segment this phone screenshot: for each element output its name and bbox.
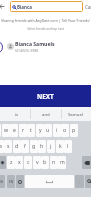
- staticText: g: [32, 143, 36, 150]
- staticText: d: [15, 143, 19, 150]
- staticText: m: [60, 159, 65, 166]
- button[interactable]: e: [10, 124, 18, 137]
- button[interactable]: y: [36, 124, 44, 137]
- button[interactable]: NEXT: [0, 85, 91, 107]
- staticText: r: [22, 127, 25, 134]
- button[interactable]: EN: [7, 175, 15, 188]
- button[interactable]: h: [38, 140, 46, 153]
- button[interactable]: p: [70, 124, 78, 137]
- staticText: v: [36, 159, 39, 166]
- staticText: u: [46, 127, 50, 134]
- button[interactable]: u: [44, 124, 52, 137]
- staticText: c: [27, 159, 30, 166]
- staticText: Cancel: [85, 4, 91, 10]
- staticText: p: [72, 127, 76, 134]
- button[interactable]: Shift: [0, 156, 6, 169]
- button[interactable]: Back: [0, 2, 6, 11]
- button[interactable]: Samuel: [62, 107, 91, 121]
- button[interactable]: o: [61, 124, 69, 137]
- button[interactable]: Bianca: [10, 1, 83, 12]
- staticText: h: [40, 143, 44, 150]
- button[interactable]: Space: [25, 175, 74, 188]
- button[interactable]: m: [58, 156, 66, 169]
- button[interactable]: l: [64, 140, 72, 153]
- staticText: w: [4, 127, 9, 134]
- staticText: n: [52, 159, 56, 166]
- button[interactable]: d: [13, 140, 21, 153]
- staticText: b: [43, 159, 47, 166]
- button[interactable]: q: [0, 124, 1, 137]
- staticText: Bianca: [17, 4, 32, 10]
- staticText: o: [63, 127, 67, 134]
- staticText: f: [24, 143, 26, 150]
- button[interactable]: s: [4, 140, 12, 153]
- button[interactable]: k: [56, 140, 64, 153]
- button[interactable]: w: [2, 124, 10, 137]
- button[interactable]: Backspace: [82, 156, 91, 169]
- staticText: Sharing friends with AnyDate.com | Tell …: [1, 18, 91, 23]
- staticText: Samuel: [68, 111, 83, 117]
- staticText: t: [30, 127, 32, 134]
- staticText: .: [79, 179, 81, 184]
- staticText: Select friends and tap next: [0, 27, 91, 31]
- staticText: x: [18, 159, 21, 166]
- staticText: i: [56, 127, 58, 134]
- staticText: e: [13, 127, 16, 134]
- staticText: k: [59, 143, 62, 150]
- button[interactable]: Emoji: [16, 175, 24, 188]
- button[interactable]: r: [19, 124, 27, 137]
- button[interactable]: g: [30, 140, 38, 153]
- button[interactable]: z: [7, 156, 15, 169]
- staticText: ?1#: [0, 180, 4, 184]
- button[interactable]: Symbols: [0, 175, 5, 188]
- button[interactable]: and: [31, 107, 61, 121]
- staticText: j: [50, 143, 52, 150]
- button[interactable]: f: [21, 140, 29, 153]
- button[interactable]: is: [0, 107, 30, 121]
- staticText: y: [39, 127, 42, 134]
- staticText: NEXT: [37, 92, 54, 101]
- staticText: and: [42, 111, 50, 117]
- button[interactable]: x: [15, 156, 23, 169]
- button[interactable]: a: [0, 140, 4, 153]
- button[interactable]: c: [24, 156, 32, 169]
- button[interactable]: Bianca Samuels: [0, 38, 91, 56]
- staticText: Bianca Samuels: [15, 41, 55, 48]
- staticText: z: [10, 159, 13, 166]
- button[interactable]: Search: [85, 175, 91, 188]
- staticText: s: [7, 143, 10, 150]
- staticText: a: [0, 143, 2, 150]
- button[interactable]: Cancel: [85, 3, 91, 11]
- button[interactable]: v: [33, 156, 41, 169]
- button[interactable]: j: [47, 140, 55, 153]
- staticText: (414)555-9988: [15, 48, 39, 53]
- button[interactable]: b: [41, 156, 49, 169]
- staticText: is: [15, 111, 19, 117]
- button[interactable]: t: [27, 124, 35, 137]
- button[interactable]: i: [53, 124, 61, 137]
- button[interactable]: n: [50, 156, 58, 169]
- staticText: EN: [9, 180, 14, 184]
- staticText: l: [67, 143, 69, 150]
